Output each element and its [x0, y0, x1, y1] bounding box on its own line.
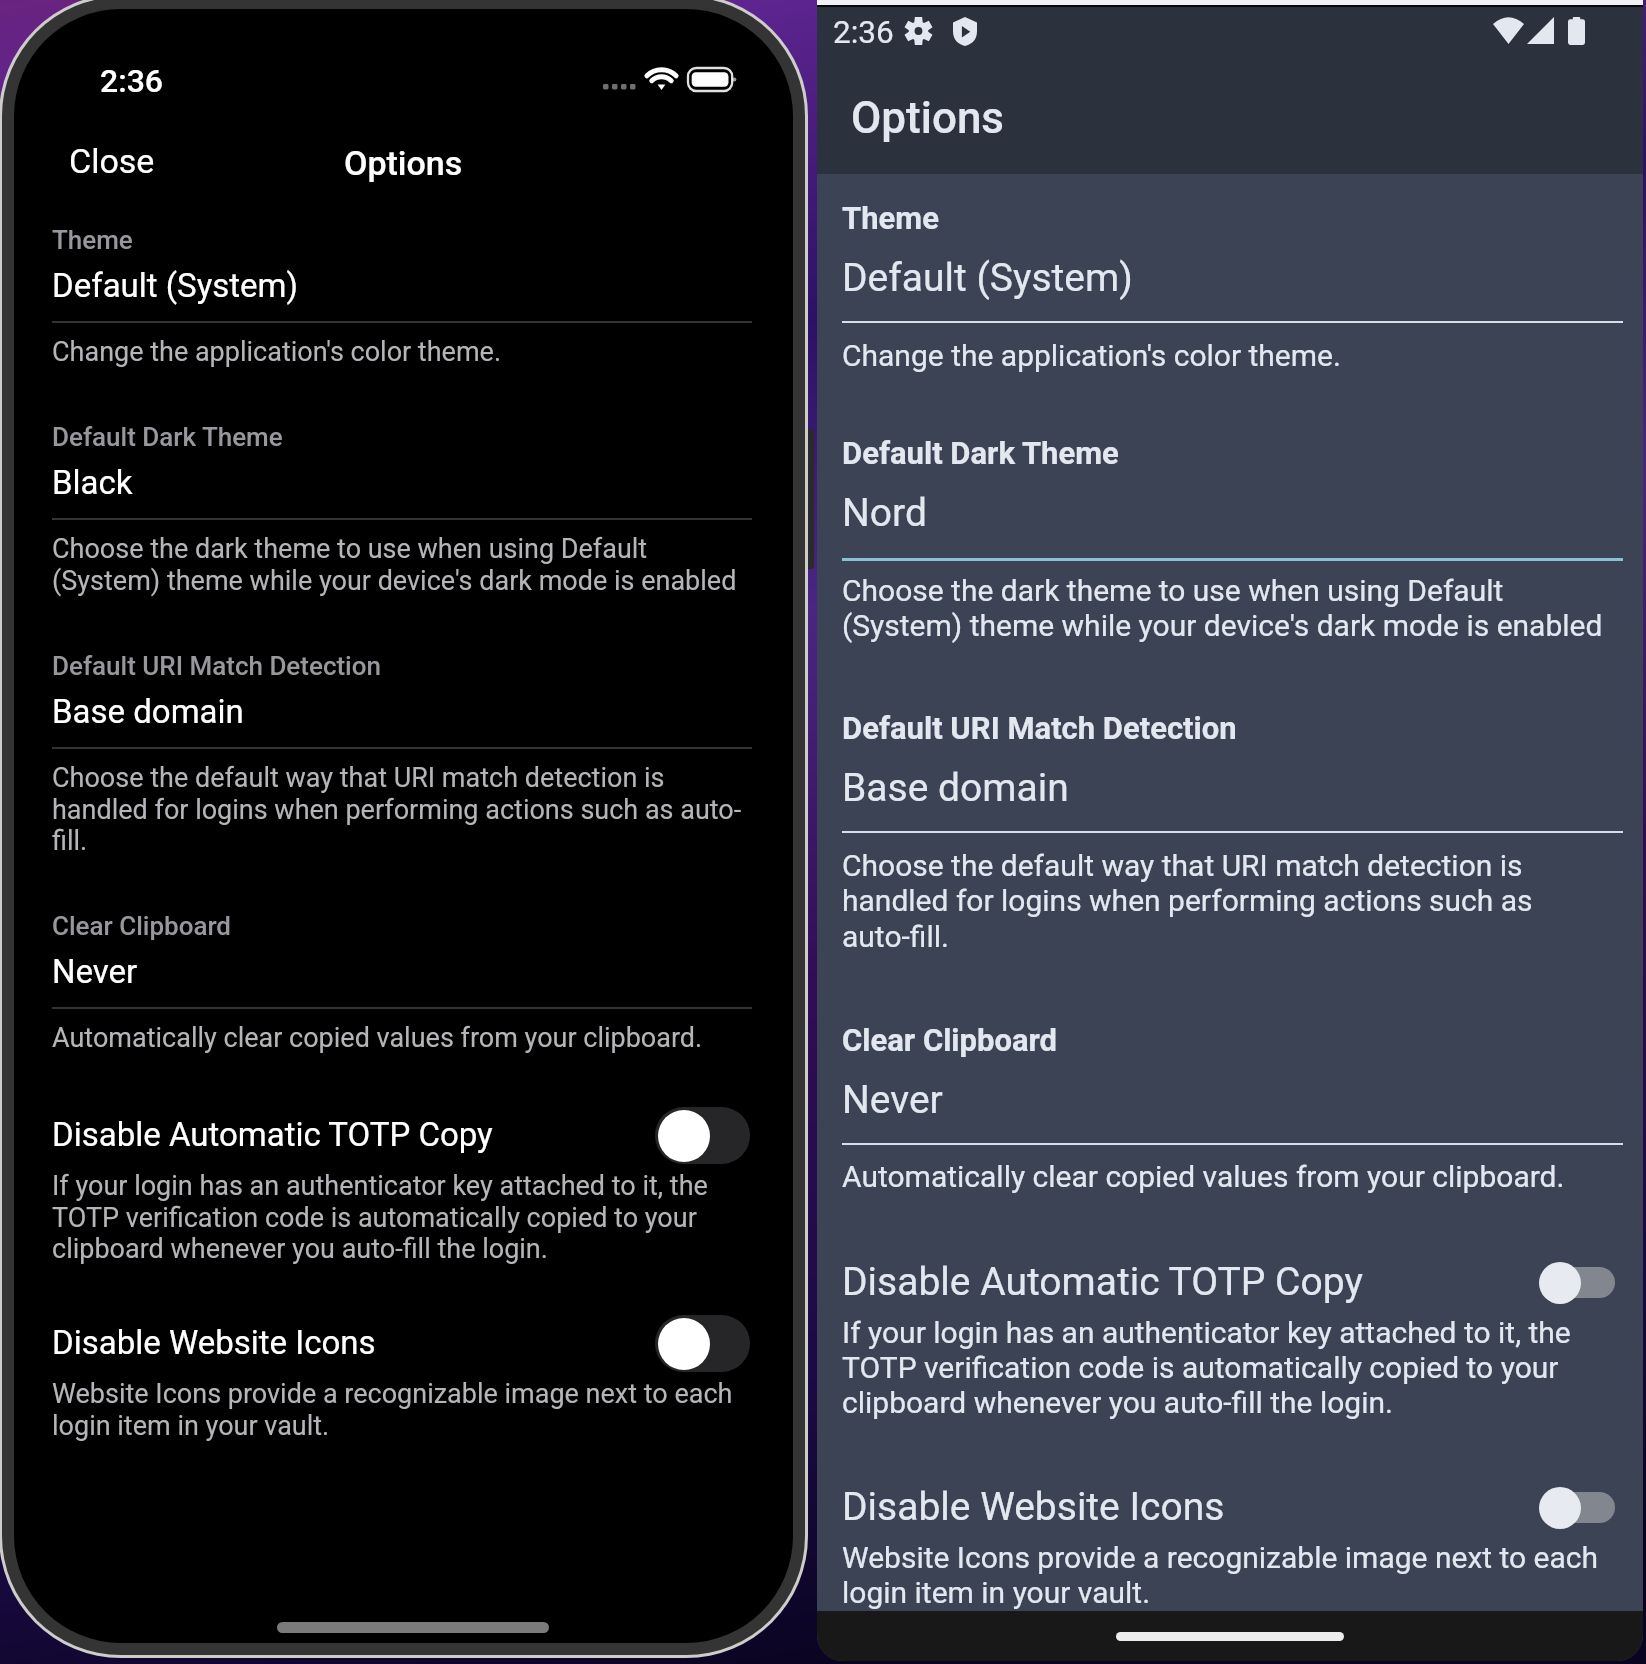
button[interactable]: Clear Clipboard: [842, 1011, 1623, 1148]
staticText: Options: [344, 143, 463, 183]
button[interactable]: Disable Website Icons: [655, 1315, 750, 1372]
staticText: 2:36: [100, 62, 163, 100]
staticText: Default (System): [52, 266, 299, 305]
staticText: Never: [842, 1077, 943, 1123]
staticText: Change the application's color theme.: [52, 336, 502, 368]
staticText: Disable Website Icons: [52, 1323, 376, 1362]
staticText: Choose the default way that URI match de…: [842, 848, 1533, 955]
staticText: Black: [52, 463, 133, 502]
button[interactable]: Close: [55, 129, 169, 193]
button[interactable]: Default URI Match Detection: [842, 699, 1623, 836]
button[interactable]: Default Dark Theme: [52, 411, 752, 521]
button[interactable]: Disable Website Icons: [842, 1472, 1623, 1542]
button[interactable]: Default Dark Theme: [842, 424, 1623, 561]
button[interactable]: Disable Automatic TOTP Copy: [52, 1104, 752, 1166]
staticText: Default (System): [842, 255, 1133, 301]
staticText: Choose the dark theme to use when using …: [52, 533, 737, 596]
button[interactable]: Disable Automatic TOTP Copy: [1537, 1261, 1617, 1305]
staticText: Base domain: [842, 765, 1069, 811]
button[interactable]: Theme: [52, 214, 752, 324]
staticText: Disable Automatic TOTP Copy: [52, 1115, 493, 1154]
staticText: Automatically clear copied values from y…: [52, 1022, 703, 1054]
staticText: Never: [52, 952, 138, 991]
button[interactable]: Options: [14, 9, 133, 49]
staticText: Close: [69, 141, 155, 181]
staticText: If your login has an authenticator key a…: [842, 1315, 1571, 1420]
staticText: Default Dark Theme: [52, 422, 283, 452]
staticText: 2:36: [833, 14, 894, 51]
staticText: Default URI Match Detection: [842, 710, 1237, 746]
staticText: Theme: [842, 200, 939, 236]
staticText: Choose the dark theme to use when using …: [842, 573, 1603, 644]
button[interactable]: Default URI Match Detection: [52, 640, 752, 750]
button[interactable]: Disable Website Icons: [1537, 1486, 1617, 1530]
staticText: Change the application's color theme.: [842, 338, 1341, 373]
button[interactable]: Disable Website Icons: [52, 1312, 752, 1374]
button[interactable]: Theme: [842, 189, 1623, 326]
staticText: Theme: [52, 225, 133, 255]
staticText: Default Dark Theme: [842, 435, 1119, 471]
staticText: Automatically clear copied values from y…: [842, 1159, 1565, 1194]
staticText: If your login has an authenticator key a…: [52, 1170, 708, 1264]
staticText: Disable Website Icons: [842, 1484, 1225, 1530]
button[interactable]: Clear Clipboard: [52, 900, 752, 1010]
staticText: Nord: [842, 490, 927, 536]
staticText: Clear Clipboard: [52, 911, 232, 941]
button[interactable]: Disable Automatic TOTP Copy: [655, 1107, 750, 1164]
button[interactable]: Disable Automatic TOTP Copy: [842, 1247, 1623, 1317]
staticText: Website Icons provide a recognizable ima…: [842, 1540, 1599, 1610]
staticText: Clear Clipboard: [842, 1022, 1058, 1058]
staticText: Choose the default way that URI match de…: [52, 762, 742, 856]
staticText: Base domain: [52, 692, 244, 731]
staticText: Website Icons provide a recognizable ima…: [52, 1378, 733, 1441]
staticText: Disable Automatic TOTP Copy: [842, 1259, 1363, 1305]
staticText: Default URI Match Detection: [52, 651, 381, 681]
staticText: Options: [851, 92, 1005, 144]
